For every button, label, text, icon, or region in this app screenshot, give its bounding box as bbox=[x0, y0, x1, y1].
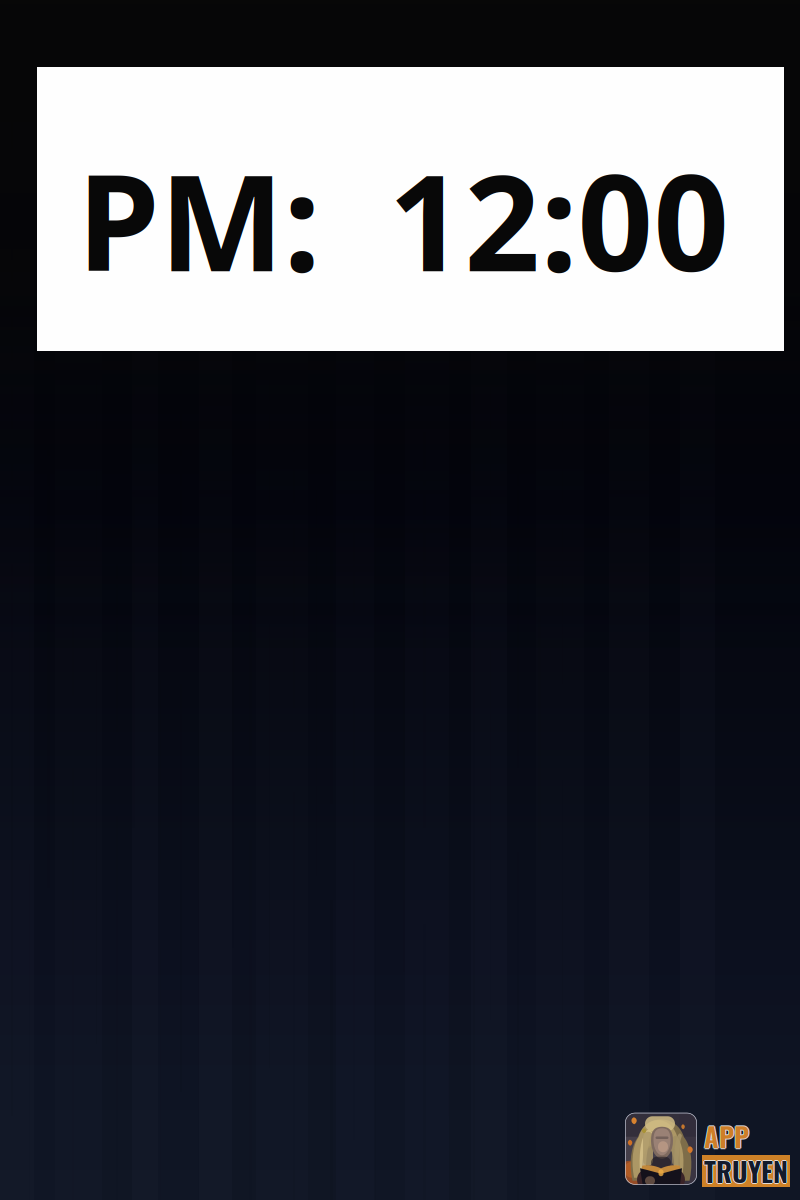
staticText: TRUYEN bbox=[703, 1151, 787, 1191]
staticText: TRUYEN bbox=[704, 1150, 788, 1190]
staticText: TRUYEN bbox=[704, 1151, 788, 1191]
staticText: APP bbox=[704, 1116, 749, 1156]
staticText: TRUYEN bbox=[704, 1152, 788, 1192]
button[interactable]: App Truyen bbox=[625, 1108, 800, 1200]
staticText: APP bbox=[705, 1116, 750, 1156]
staticText: APP bbox=[703, 1116, 748, 1156]
staticText: APP bbox=[704, 1117, 749, 1157]
staticText: APP bbox=[704, 1115, 749, 1155]
staticText: TRUYEN bbox=[705, 1151, 789, 1191]
staticText: PM: 12:00 bbox=[77, 130, 729, 310]
